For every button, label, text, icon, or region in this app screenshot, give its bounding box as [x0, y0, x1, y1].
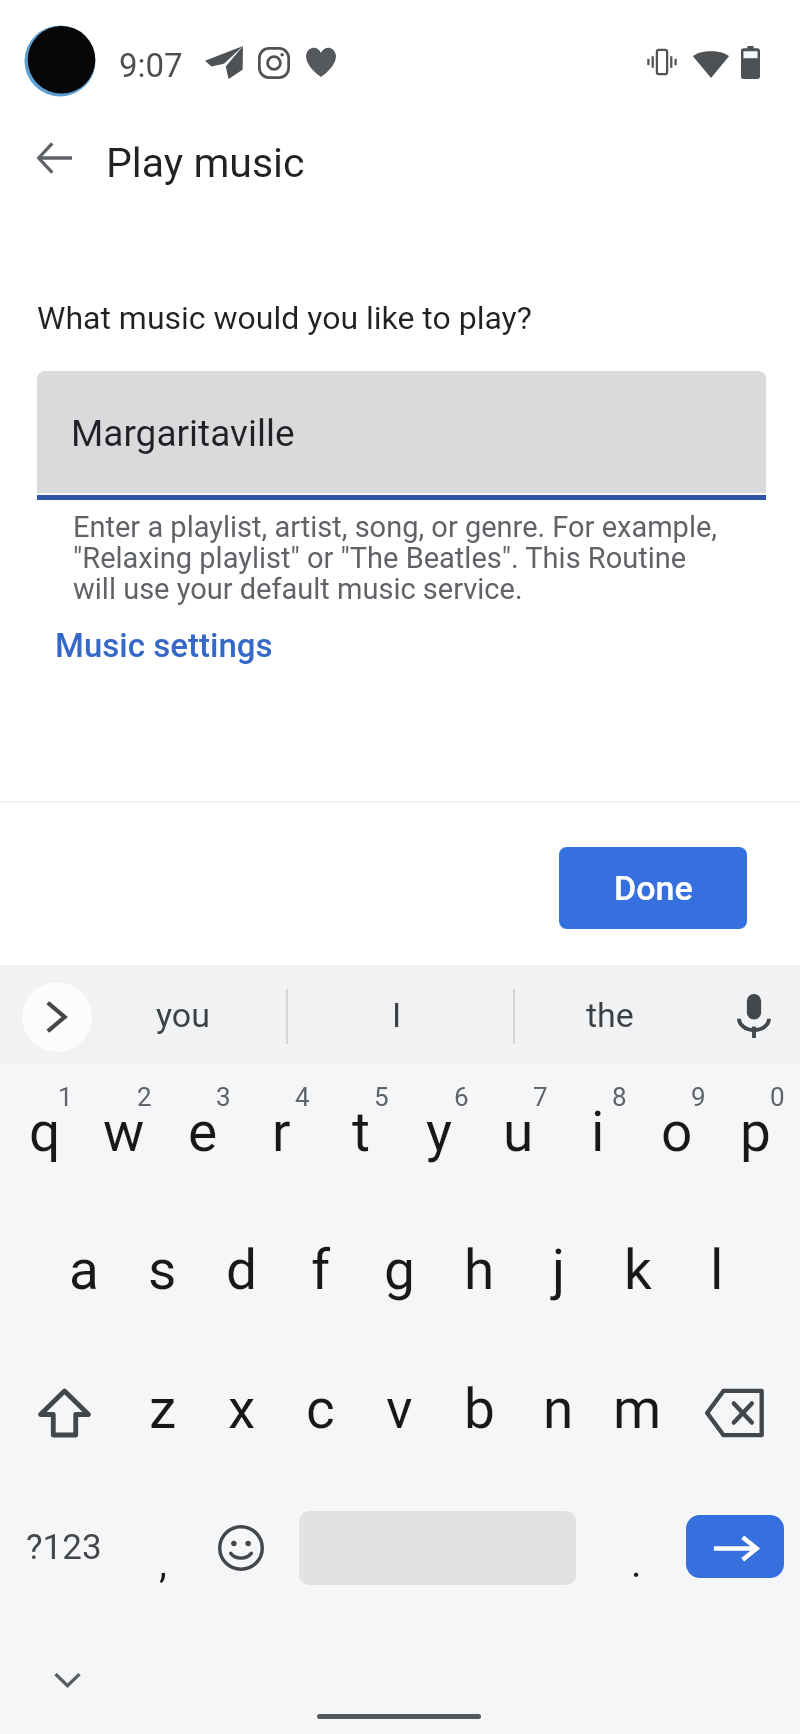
button[interactable]: Backspace: [691, 1369, 779, 1457]
button[interactable]: ,: [130, 1497, 196, 1597]
staticText: .: [631, 1540, 642, 1587]
staticText: k: [624, 1238, 652, 1302]
button[interactable]: w: [84, 1073, 163, 1191]
button[interactable]: a: [44, 1211, 123, 1329]
staticText: 9:07: [119, 46, 183, 85]
staticText: Enter a playlist, artist, song, or genre…: [73, 510, 718, 606]
staticText: the: [586, 995, 634, 1035]
staticText: t: [352, 1100, 370, 1164]
staticText: y: [426, 1100, 453, 1164]
staticText: b: [464, 1377, 495, 1441]
staticText: o: [661, 1100, 693, 1164]
staticText: z: [149, 1377, 177, 1441]
button[interactable]: q: [5, 1073, 84, 1191]
button[interactable]: Back: [23, 126, 87, 190]
staticText: x: [228, 1377, 256, 1441]
button[interactable]: Emoji: [205, 1512, 277, 1584]
staticText: s: [148, 1238, 177, 1302]
staticText: Play music: [106, 139, 305, 187]
button[interactable]: you: [113, 975, 253, 1055]
button[interactable]: n: [519, 1350, 598, 1468]
button[interactable]: Enter: [686, 1515, 784, 1578]
button[interactable]: i: [558, 1073, 637, 1191]
button[interactable]: k: [598, 1211, 677, 1329]
button[interactable]: I: [327, 975, 467, 1055]
staticText: n: [543, 1377, 574, 1441]
staticText: I: [392, 995, 402, 1035]
staticText: What music would you like to play?: [37, 299, 532, 337]
button[interactable]: ?123: [6, 1497, 122, 1597]
staticText: 9: [691, 1082, 706, 1112]
staticText: p: [740, 1100, 771, 1164]
button[interactable]: .: [600, 1497, 666, 1597]
button[interactable]: b: [440, 1350, 519, 1468]
staticText: q: [29, 1100, 61, 1164]
button[interactable]: s: [123, 1211, 202, 1329]
staticText: w: [103, 1100, 145, 1164]
staticText: 7: [533, 1082, 548, 1112]
staticText: i: [591, 1100, 605, 1164]
button[interactable]: Shift: [20, 1369, 108, 1457]
staticText: c: [306, 1377, 335, 1441]
staticText: Margaritaville: [71, 412, 295, 455]
button[interactable]: r: [242, 1073, 321, 1191]
button[interactable]: Voice input: [724, 986, 784, 1046]
button[interactable]: o: [637, 1073, 716, 1191]
staticText: f: [311, 1238, 331, 1302]
staticText: 0: [770, 1082, 785, 1112]
button[interactable]: Done: [559, 847, 747, 929]
staticText: 2: [137, 1082, 152, 1112]
button[interactable]: v: [360, 1350, 439, 1468]
button[interactable]: d: [202, 1211, 281, 1329]
staticText: l: [710, 1238, 724, 1302]
staticText: ,: [159, 1540, 167, 1587]
button[interactable]: Margaritaville: [37, 371, 766, 493]
button[interactable]: More suggestions: [22, 982, 92, 1052]
staticText: 4: [295, 1082, 310, 1112]
staticText: 6: [454, 1082, 469, 1112]
staticText: a: [69, 1238, 99, 1302]
button[interactable]: Hide keyboard: [35, 1648, 99, 1712]
staticText: 8: [612, 1082, 627, 1112]
staticText: v: [386, 1377, 413, 1441]
button[interactable]: p: [716, 1073, 795, 1191]
button[interactable]: z: [123, 1350, 202, 1468]
button[interactable]: j: [519, 1211, 598, 1329]
staticText: Done: [614, 868, 693, 908]
button[interactable]: l: [677, 1211, 756, 1329]
staticText: d: [226, 1238, 258, 1302]
staticText: r: [272, 1100, 291, 1164]
button[interactable]: e: [163, 1073, 242, 1191]
staticText: g: [384, 1238, 415, 1302]
button[interactable]: x: [202, 1350, 281, 1468]
button[interactable]: m: [598, 1350, 677, 1468]
button[interactable]: the: [540, 975, 680, 1055]
staticText: e: [188, 1100, 218, 1164]
button[interactable]: c: [281, 1350, 360, 1468]
button[interactable]: g: [360, 1211, 439, 1329]
staticText: 1: [58, 1082, 73, 1112]
staticText: ?123: [26, 1527, 102, 1568]
staticText: j: [552, 1238, 566, 1302]
staticText: 3: [216, 1082, 231, 1112]
staticText: u: [503, 1100, 534, 1164]
staticText: you: [156, 995, 210, 1035]
button[interactable]: t: [321, 1073, 400, 1191]
button[interactable]: h: [440, 1211, 519, 1329]
button[interactable]: Music settings: [49, 622, 279, 669]
staticText: 5: [374, 1082, 389, 1112]
button[interactable]: u: [479, 1073, 558, 1191]
button[interactable]: y: [400, 1073, 479, 1191]
button[interactable]: f: [281, 1211, 360, 1329]
staticText: Music settings: [55, 626, 273, 665]
staticText: h: [464, 1238, 495, 1302]
staticText: m: [613, 1377, 662, 1441]
